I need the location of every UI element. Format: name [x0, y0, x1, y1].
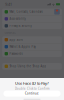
staticText: Passwords [9, 52, 22, 55]
staticText: GENERAL [4, 31, 15, 34]
button[interactable]: Passwords [2, 50, 62, 57]
staticText: Continue [25, 92, 39, 95]
staticText: Double Click to Confirm [15, 87, 49, 90]
button[interactable]: Mail, Contacts, Calendars [2, 8, 62, 15]
staticText: Accessibility [9, 17, 25, 21]
staticText: Use Face ID to Pay? [15, 80, 49, 86]
staticText: 9:41 [5, 2, 12, 7]
button[interactable]: Wallet & Apple Pay [2, 43, 62, 50]
staticText: Privacy & Security [9, 24, 31, 28]
button[interactable]: Continue [3, 91, 61, 97]
staticText: Wallet & Apple Pay [9, 45, 35, 48]
button[interactable]: Privacy & Security [2, 22, 62, 29]
button[interactable]: Accessibility [2, 15, 62, 22]
staticText: Shop Using the Shop App [9, 65, 46, 68]
button[interactable]: App Store [2, 36, 62, 43]
button[interactable]: Shop Using the Shop App [2, 63, 62, 70]
staticText: Mail, Contacts, Calendars [9, 10, 42, 14]
staticText: App Store [9, 38, 23, 41]
